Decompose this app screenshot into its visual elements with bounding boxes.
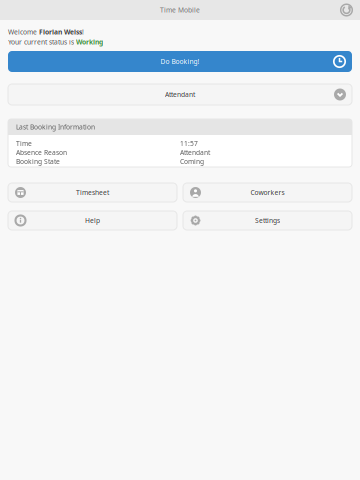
- button[interactable]: Refresh: [338, 1, 355, 18]
- staticText: Time: [16, 139, 32, 148]
- button[interactable]: Settings: [183, 211, 352, 230]
- staticText: Do Booking!: [160, 57, 199, 66]
- staticText: !: [82, 28, 84, 36]
- staticText: Coming: [180, 157, 204, 166]
- staticText: Timesheet: [76, 188, 109, 197]
- staticText: Booking State: [16, 157, 60, 166]
- staticText: Attendant: [180, 148, 210, 157]
- staticText: Attendant: [165, 90, 195, 99]
- staticText: Your current status is: [8, 38, 76, 46]
- staticText: Working: [76, 38, 103, 46]
- button[interactable]: Help: [8, 211, 177, 230]
- staticText: Last Booking Information: [16, 123, 95, 131]
- staticText: Coworkers: [250, 188, 284, 197]
- button[interactable]: Coworkers: [183, 183, 352, 202]
- staticText: Florian Weiss: [39, 28, 82, 36]
- button[interactable]: Do Booking!: [8, 51, 352, 72]
- staticText: 11:57: [180, 139, 198, 148]
- staticText: Settings: [255, 216, 280, 225]
- button[interactable]: Timesheet: [8, 183, 177, 202]
- staticText: Time Mobile: [160, 6, 200, 14]
- staticText: Absence Reason: [16, 148, 67, 157]
- button[interactable]: Attendant: [8, 84, 352, 105]
- staticText: Welcome: [8, 28, 39, 36]
- staticText: Help: [85, 216, 100, 225]
